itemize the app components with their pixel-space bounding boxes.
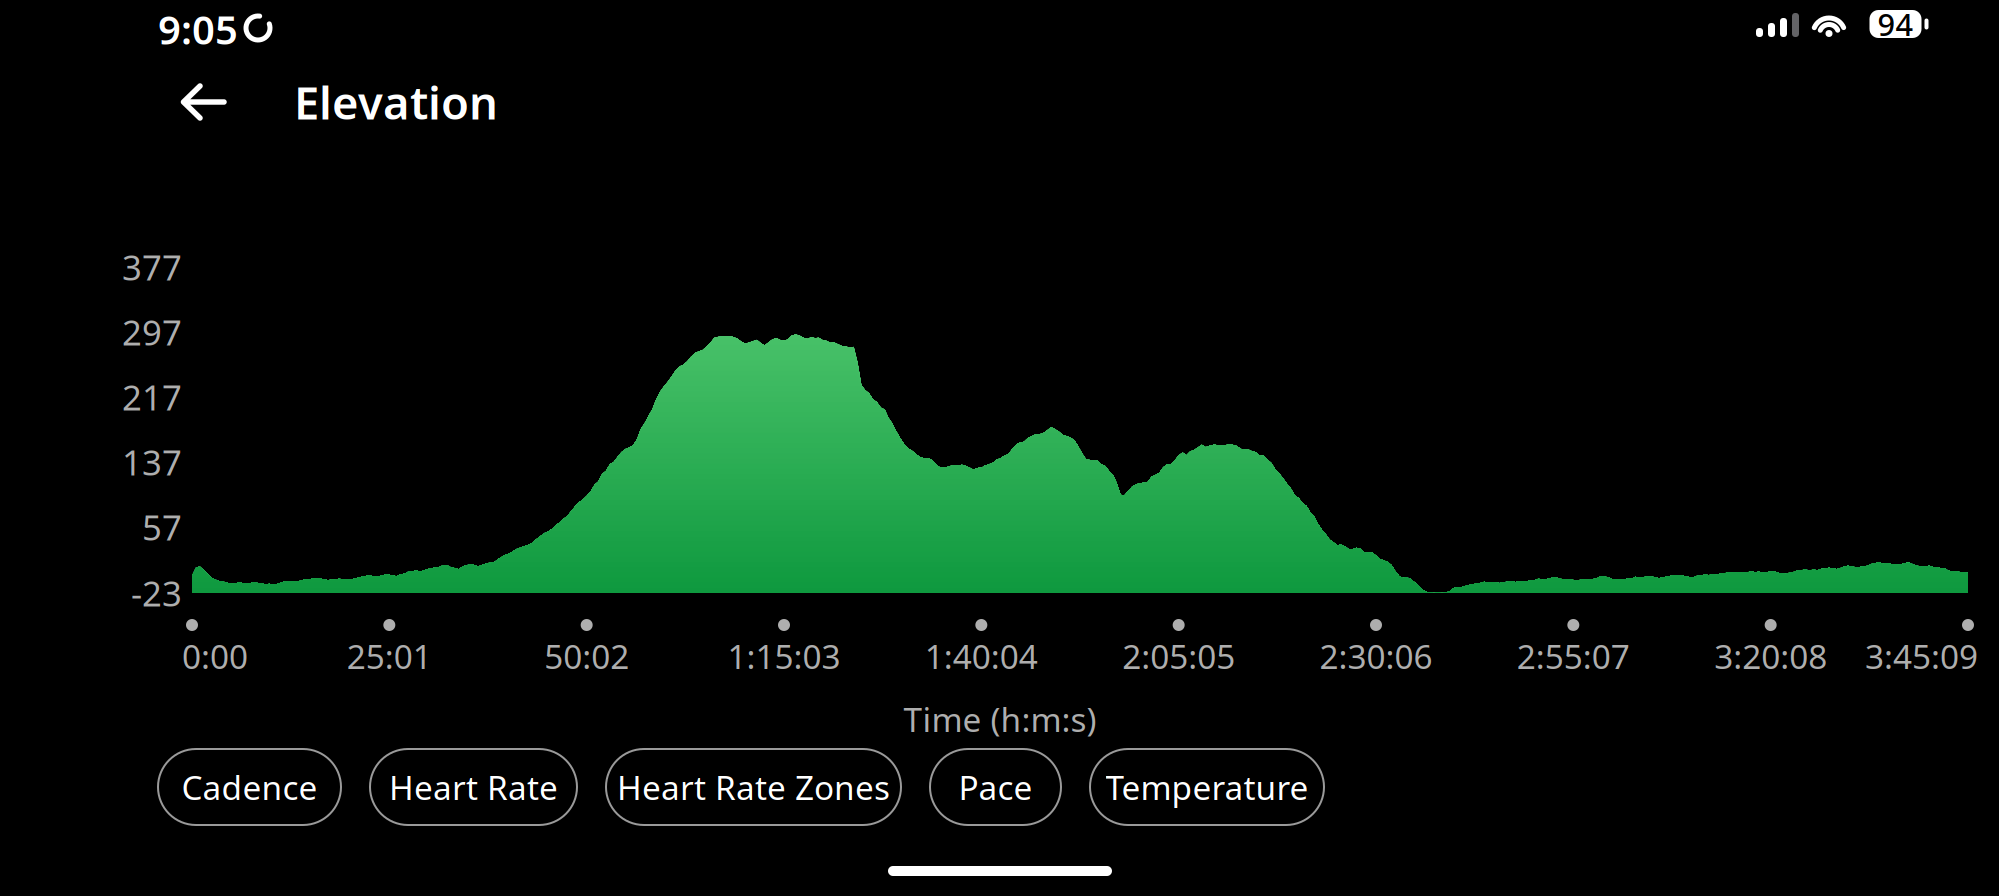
staticText: Elevation: [294, 72, 498, 132]
staticText: 1:40:04: [925, 634, 1038, 678]
staticText: Temperature: [1105, 765, 1308, 809]
staticText: 1:15:03: [727, 634, 840, 678]
staticText: 2:55:07: [1517, 634, 1630, 678]
staticText: Time (h:m:s): [903, 697, 1096, 741]
staticText: 0:00: [182, 634, 248, 678]
button[interactable]: Heart Rate: [370, 749, 577, 825]
button[interactable]: Cadence: [158, 749, 341, 825]
staticText: Heart Rate: [389, 765, 558, 809]
staticText: 3:45:09: [1865, 634, 1978, 678]
staticText: 94: [1877, 4, 1913, 44]
staticText: 3:20:08: [1714, 634, 1827, 678]
staticText: 57: [142, 504, 182, 550]
staticText: -23: [131, 570, 182, 616]
staticText: 217: [122, 374, 182, 420]
button[interactable]: Heart Rate Zones: [606, 749, 901, 825]
button[interactable]: Temperature: [1090, 749, 1324, 825]
staticText: 137: [122, 439, 182, 485]
staticText: Cadence: [181, 765, 317, 809]
staticText: 2:05:05: [1122, 634, 1235, 678]
staticText: Pace: [958, 765, 1032, 809]
staticText: 377: [122, 244, 182, 290]
staticText: 9:05: [158, 2, 238, 55]
staticText: Heart Rate Zones: [617, 765, 890, 809]
staticText: 25:01: [347, 634, 432, 678]
staticText: 2:30:06: [1319, 634, 1432, 678]
button[interactable]: Pace: [930, 749, 1061, 825]
button[interactable]: Back: [180, 78, 246, 126]
staticText: 50:02: [544, 634, 629, 678]
staticText: 297: [122, 309, 182, 355]
